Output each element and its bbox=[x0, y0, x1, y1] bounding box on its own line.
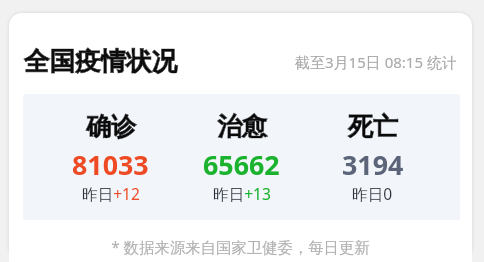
staticText: 截至3月15日 08:15 统计 bbox=[295, 52, 457, 72]
staticText: 全国疫情状况 bbox=[24, 45, 177, 77]
staticText: 死亡 bbox=[348, 111, 398, 142]
button[interactable]: 死亡 bbox=[307, 111, 438, 220]
button[interactable]: 确诊 bbox=[45, 111, 176, 220]
staticText: 治愈 bbox=[217, 111, 267, 142]
button[interactable]: 全国疫情状况 bbox=[24, 45, 177, 77]
button[interactable]: 统计时间 bbox=[295, 52, 457, 72]
staticText: 65662 bbox=[203, 146, 280, 183]
staticText: 死亡 bbox=[348, 111, 398, 142]
staticText: 3194 bbox=[342, 146, 404, 183]
staticText: 确诊 bbox=[86, 111, 136, 142]
button[interactable]: 治愈 bbox=[176, 111, 307, 220]
staticText: 治愈 bbox=[217, 111, 267, 142]
staticText: 昨日+13 bbox=[213, 183, 271, 204]
staticText: 确诊 bbox=[86, 111, 136, 142]
button[interactable]: * 数据来源来自国家卫健委，每日更新 bbox=[9, 237, 472, 258]
staticText: 昨日0 bbox=[352, 183, 393, 204]
staticText: 81033 bbox=[72, 146, 149, 183]
staticText: 昨日+12 bbox=[82, 183, 140, 204]
staticText: 全国疫情状况 bbox=[24, 45, 177, 77]
